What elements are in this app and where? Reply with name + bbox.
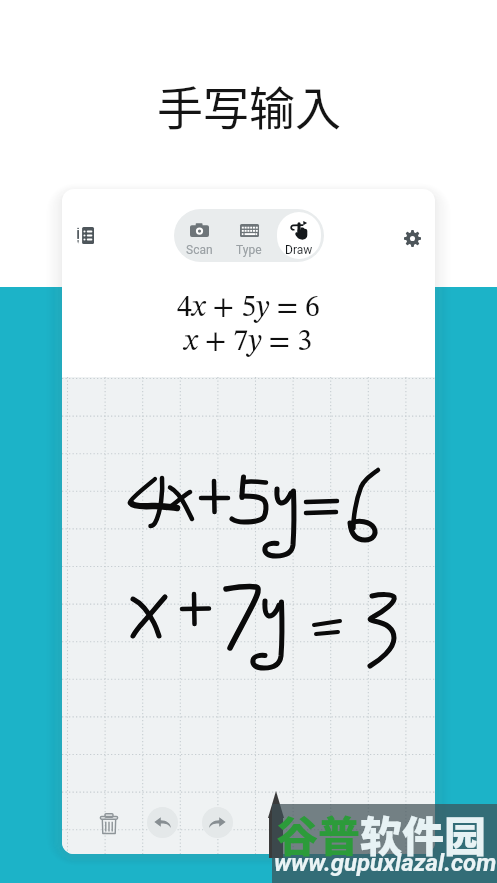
button[interactable]: Redo [202,807,233,838]
staticText: x + 7y = 3 [184,327,313,357]
staticText: Draw [285,243,313,257]
button[interactable]: Draw [277,212,321,259]
staticText: Type [236,243,262,257]
button[interactable]: Notes [68,218,102,252]
staticText: 4x + 5y = 6 [177,293,320,323]
button[interactable]: Settings [395,221,429,255]
staticText: 手写输入 [157,72,341,139]
button[interactable]: Scan [174,209,224,262]
staticText: www.gupuxlazal.com [274,849,497,877]
staticText: 谷普软件园 [276,803,487,864]
button[interactable]: Undo [147,807,178,838]
staticText: Scan [186,243,213,257]
button[interactable]: Type [224,209,274,262]
button[interactable]: Delete [91,806,127,842]
